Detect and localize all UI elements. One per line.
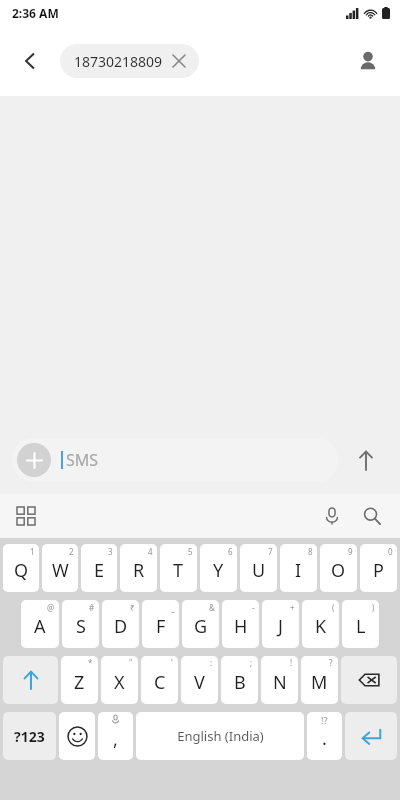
button[interactable]: @: [21, 600, 59, 648]
staticText: P: [373, 558, 384, 583]
button[interactable]: #: [62, 600, 99, 648]
button[interactable]: English (India): [136, 712, 304, 760]
button[interactable]: Comma, voice: [98, 712, 133, 760]
staticText: C: [154, 670, 166, 695]
staticText: E: [94, 558, 105, 583]
staticText: 1: [30, 546, 35, 557]
button[interactable]: ): [342, 600, 379, 648]
staticText: 4: [148, 546, 153, 557]
button[interactable]: Emoji: [59, 712, 95, 760]
staticText: M: [311, 670, 328, 695]
button[interactable]: Search: [352, 496, 392, 536]
button[interactable]: 9: [320, 544, 357, 592]
staticText: ?: [329, 657, 333, 668]
staticText: 3: [108, 546, 113, 557]
staticText: 0: [388, 546, 393, 557]
button[interactable]: 18730218809: [60, 44, 199, 78]
staticText: A: [34, 614, 46, 639]
staticText: F: [156, 614, 166, 639]
button[interactable]: Attach: [12, 438, 338, 482]
button[interactable]: -: [222, 600, 259, 648]
button[interactable]: Contact: [346, 39, 390, 83]
staticText: X: [114, 670, 125, 695]
button[interactable]: :: [181, 656, 218, 704]
staticText: V: [194, 670, 205, 695]
staticText: 2:36 AM: [12, 5, 59, 21]
button[interactable]: 7: [240, 544, 277, 592]
staticText: K: [315, 614, 327, 639]
staticText: B: [234, 670, 246, 695]
button[interactable]: 8: [280, 544, 317, 592]
staticText: Y: [213, 558, 224, 583]
staticText: ": [129, 657, 133, 668]
staticText: !: [290, 657, 293, 668]
button[interactable]: ?123: [3, 712, 56, 760]
staticText: 6: [228, 546, 233, 557]
button[interactable]: 5: [160, 544, 197, 592]
button[interactable]: Voice input: [312, 496, 352, 536]
button[interactable]: ": [101, 656, 138, 704]
button[interactable]: Send: [344, 438, 388, 482]
staticText: @: [47, 602, 55, 613]
button[interactable]: ₹: [102, 600, 139, 648]
staticText: R: [133, 558, 145, 583]
button[interactable]: +: [262, 600, 299, 648]
staticText: ₹: [130, 602, 135, 613]
staticText: &: [209, 602, 215, 613]
staticText: O: [331, 558, 346, 583]
staticText: 2: [69, 546, 74, 557]
staticText: ': [171, 657, 173, 668]
staticText: ,: [113, 727, 118, 752]
staticText: 18730218809: [74, 52, 163, 71]
staticText: ;: [250, 657, 253, 668]
button[interactable]: 6: [200, 544, 237, 592]
staticText: English (India): [177, 727, 264, 745]
button[interactable]: *: [61, 656, 98, 704]
button[interactable]: Apps: [8, 498, 44, 534]
staticText: I: [295, 558, 302, 583]
staticText: 5: [188, 546, 193, 557]
button[interactable]: 3: [81, 544, 117, 592]
staticText: Q: [14, 558, 29, 583]
button[interactable]: ;: [221, 656, 258, 704]
staticText: J: [278, 614, 283, 639]
staticText: SMS: [66, 449, 99, 471]
staticText: 9: [348, 546, 353, 557]
button[interactable]: _: [142, 600, 179, 648]
staticText: D: [114, 614, 128, 639]
staticText: -: [252, 602, 255, 613]
staticText: #: [89, 602, 95, 613]
staticText: *: [88, 657, 93, 668]
button[interactable]: 4: [120, 544, 157, 592]
button[interactable]: !: [261, 656, 298, 704]
staticText: _: [171, 602, 175, 613]
button[interactable]: &: [182, 600, 219, 648]
staticText: !?: [321, 714, 328, 726]
button[interactable]: Attach: [17, 443, 51, 477]
staticText: H: [234, 614, 248, 639]
staticText: L: [356, 614, 366, 639]
button[interactable]: !?: [307, 712, 342, 760]
button[interactable]: ?: [301, 656, 338, 704]
staticText: W: [52, 558, 69, 583]
staticText: ): [372, 602, 375, 613]
staticText: +: [290, 602, 295, 613]
button[interactable]: 2: [42, 544, 78, 592]
staticText: :: [210, 657, 213, 668]
staticText: S: [76, 614, 86, 639]
button[interactable]: 0: [360, 544, 397, 592]
staticText: U: [252, 558, 266, 583]
button[interactable]: Backspace: [341, 656, 397, 704]
button[interactable]: Back: [8, 39, 52, 83]
staticText: G: [194, 614, 208, 639]
staticText: 8: [308, 546, 313, 557]
staticText: .: [322, 726, 327, 751]
staticText: (: [332, 602, 335, 613]
button[interactable]: 1: [3, 544, 39, 592]
staticText: N: [273, 670, 287, 695]
button[interactable]: ': [141, 656, 178, 704]
staticText: T: [173, 558, 184, 583]
button[interactable]: (: [302, 600, 339, 648]
button[interactable]: Shift: [3, 656, 58, 704]
button[interactable]: Enter: [345, 712, 397, 760]
